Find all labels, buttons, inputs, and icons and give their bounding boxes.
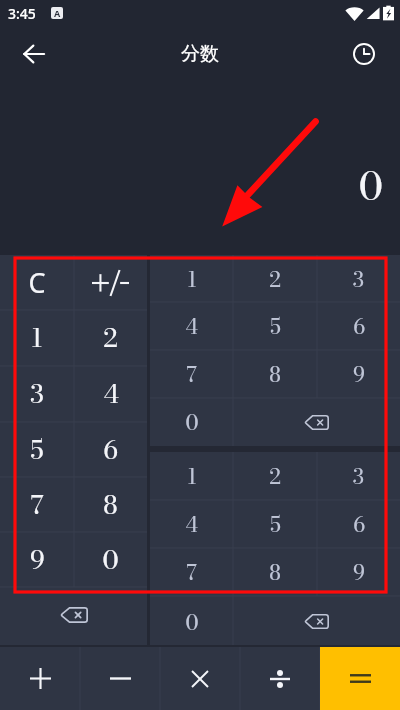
- staticText: 8: [269, 556, 281, 588]
- staticText: 1: [31, 318, 43, 358]
- button[interactable]: 3: [317, 452, 400, 500]
- button[interactable]: 2: [74, 310, 147, 366]
- staticText: 4: [185, 310, 198, 342]
- button[interactable]: Backspace: [233, 398, 400, 446]
- staticText: 8: [103, 485, 118, 525]
- staticText: 2: [103, 318, 118, 358]
- button[interactable]: Back: [10, 30, 58, 78]
- button[interactable]: Equals: [320, 647, 400, 710]
- staticText: C: [28, 264, 46, 301]
- staticText: 0: [102, 540, 119, 580]
- button[interactable]: 4: [74, 366, 147, 422]
- button[interactable]: Backspace: [233, 596, 400, 647]
- button[interactable]: 0: [74, 532, 147, 587]
- button[interactable]: 9: [317, 548, 400, 596]
- staticText: 7: [186, 556, 197, 588]
- staticText: 4: [103, 374, 119, 414]
- staticText: A: [54, 7, 61, 19]
- button[interactable]: 0: [150, 398, 233, 446]
- button[interactable]: 8: [74, 477, 147, 532]
- button[interactable]: 3: [317, 255, 400, 302]
- button[interactable]: 7: [150, 350, 233, 398]
- button[interactable]: 1: [150, 255, 233, 302]
- button[interactable]: Clear: [0, 255, 74, 310]
- staticText: 3:45: [8, 4, 36, 23]
- button[interactable]: Plus minus: [74, 255, 147, 310]
- button[interactable]: History: [340, 30, 388, 78]
- staticText: 6: [353, 310, 365, 342]
- button[interactable]: 5: [0, 422, 74, 477]
- staticText: 0: [0, 156, 383, 215]
- button[interactable]: 3: [0, 366, 74, 422]
- staticText: 2: [269, 460, 281, 492]
- staticText: 6: [103, 430, 118, 470]
- button[interactable]: 8: [233, 548, 317, 596]
- button[interactable]: Backspace: [0, 587, 147, 647]
- button[interactable]: Multiply: [160, 647, 240, 710]
- button[interactable]: 5: [233, 302, 317, 350]
- staticText: 7: [186, 358, 197, 390]
- staticText: 分数: [181, 42, 219, 66]
- button[interactable]: 9: [0, 532, 74, 587]
- button[interactable]: 8: [233, 350, 317, 398]
- button[interactable]: 0: [150, 596, 233, 647]
- staticText: 0: [185, 406, 199, 438]
- button[interactable]: Minus: [80, 647, 160, 710]
- staticText: 3: [353, 460, 364, 492]
- button[interactable]: 4: [150, 302, 233, 350]
- staticText: 1: [187, 263, 197, 295]
- button[interactable]: 5: [233, 500, 317, 548]
- button[interactable]: 6: [317, 302, 400, 350]
- staticText: 5: [270, 508, 281, 540]
- staticText: 5: [30, 430, 44, 470]
- button[interactable]: Plus: [0, 647, 80, 710]
- staticText: 5: [270, 310, 281, 342]
- button[interactable]: 6: [74, 422, 147, 477]
- button[interactable]: 2: [233, 255, 317, 302]
- staticText: 8: [269, 358, 281, 390]
- button[interactable]: 4: [150, 500, 233, 548]
- staticText: 2: [269, 263, 281, 295]
- staticText: 6: [353, 508, 365, 540]
- button[interactable]: 7: [0, 477, 74, 532]
- staticText: 0: [185, 606, 199, 638]
- button[interactable]: 1: [0, 310, 74, 366]
- button[interactable]: Divide: [240, 647, 320, 710]
- button[interactable]: 2: [233, 452, 317, 500]
- button[interactable]: 1: [150, 452, 233, 500]
- staticText: 4: [185, 508, 198, 540]
- staticText: 3: [353, 263, 364, 295]
- staticText: 7: [30, 485, 44, 525]
- staticText: 9: [353, 556, 365, 588]
- staticText: 3: [30, 374, 44, 414]
- button[interactable]: 9: [317, 350, 400, 398]
- button[interactable]: 7: [150, 548, 233, 596]
- staticText: 1: [187, 460, 197, 492]
- staticText: 9: [30, 540, 45, 580]
- staticText: 9: [353, 358, 365, 390]
- button[interactable]: 6: [317, 500, 400, 548]
